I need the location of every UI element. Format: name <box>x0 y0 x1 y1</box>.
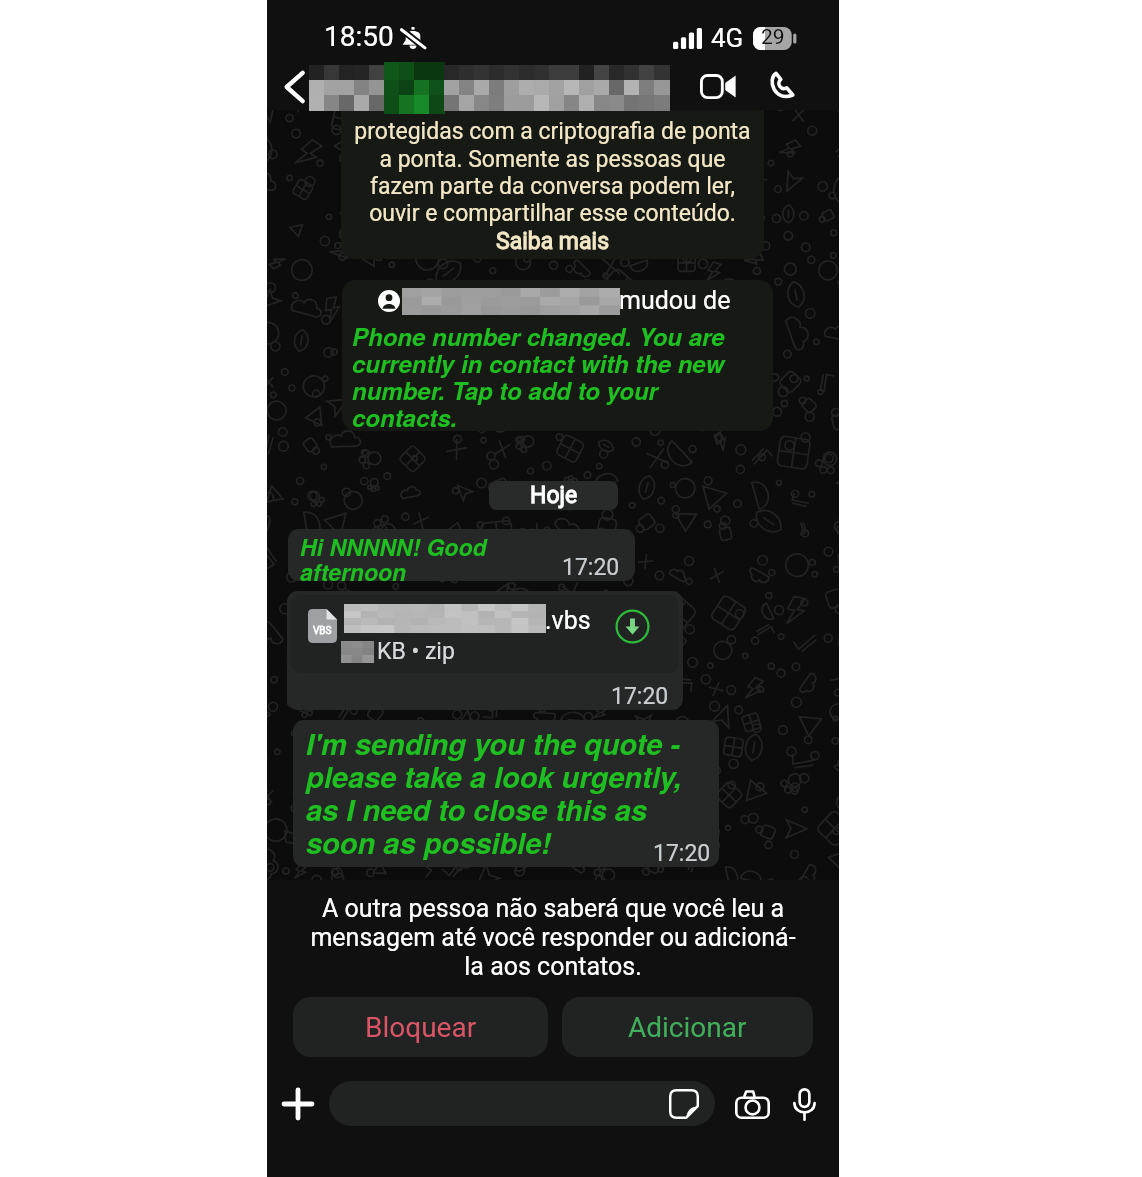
button[interactable]: Bloquear <box>293 997 548 1057</box>
button[interactable] <box>309 65 669 110</box>
staticText: Adicionar <box>628 1011 747 1044</box>
staticText: VBS <box>313 625 332 637</box>
staticText: 18:50 <box>324 20 394 53</box>
staticText: 17:20 <box>562 554 620 581</box>
button[interactable]: Download file <box>612 606 652 646</box>
staticText: Phone number changed. You are currently … <box>352 319 752 431</box>
staticText: Hi NNNNN! Good afternoon <box>300 530 495 581</box>
staticText: 29 <box>761 25 785 50</box>
button[interactable]: Attach <box>274 1080 322 1128</box>
staticText: A outra pessoa não saberá que você leu a… <box>285 894 821 981</box>
staticText: mudou de <box>619 286 731 315</box>
button[interactable]: Video call <box>695 63 741 109</box>
staticText: protegidas com a criptografia de ponta a… <box>347 118 758 226</box>
button[interactable]: VBS <box>287 591 683 710</box>
button[interactable]: Adicionar <box>562 997 813 1057</box>
staticText: 4G <box>711 23 744 53</box>
button[interactable]: mudou de <box>342 280 773 431</box>
staticText: KB • zip <box>377 638 455 665</box>
staticText: I'm sending you the quote - please take … <box>306 722 706 863</box>
button[interactable] <box>329 1081 715 1126</box>
staticText: Bloquear <box>365 1011 477 1044</box>
button[interactable]: Hi NNNNN! Good afternoon <box>288 529 635 581</box>
button[interactable]: I'm sending you the quote - please take … <box>293 720 719 867</box>
staticText: 17:20 <box>653 840 711 867</box>
button[interactable]: Camera <box>728 1080 776 1128</box>
button[interactable]: protegidas com a criptografia de ponta a… <box>341 110 764 259</box>
staticText: Hoje <box>530 482 578 509</box>
staticText: 17:20 <box>611 683 669 710</box>
button[interactable]: Hoje <box>489 481 618 510</box>
button[interactable]: Voice message <box>780 1080 828 1128</box>
staticText: Saiba mais <box>347 228 758 255</box>
button[interactable]: Voice call <box>759 63 805 109</box>
staticText: .vbs <box>545 606 591 635</box>
button[interactable]: Back <box>271 64 317 110</box>
